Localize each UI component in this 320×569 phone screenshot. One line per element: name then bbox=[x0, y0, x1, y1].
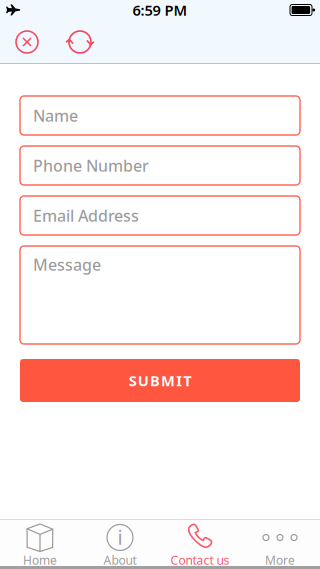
staticText: Message bbox=[33, 254, 101, 275]
button[interactable]: Phone Number bbox=[20, 146, 300, 185]
staticText: Email Address bbox=[33, 205, 139, 226]
button[interactable]: More bbox=[240, 518, 320, 567]
button[interactable]: Name bbox=[20, 96, 300, 135]
button[interactable]: Refresh bbox=[64, 22, 96, 62]
staticText: More bbox=[265, 552, 295, 568]
button[interactable]: Email Address bbox=[20, 196, 300, 235]
staticText: SUBMIT bbox=[129, 371, 191, 390]
staticText: About bbox=[103, 552, 136, 568]
staticText: Phone Number bbox=[33, 155, 149, 176]
button[interactable]: Close bbox=[11, 22, 43, 62]
staticText: 6:59 PM bbox=[132, 0, 187, 20]
button[interactable]: i bbox=[80, 518, 160, 567]
button[interactable]: SUBMIT bbox=[20, 359, 300, 402]
staticText: Home bbox=[23, 552, 57, 568]
staticText: i bbox=[117, 524, 122, 550]
button[interactable]: Message bbox=[20, 246, 300, 344]
button[interactable]: Contact us bbox=[160, 518, 240, 567]
staticText: Contact us bbox=[170, 552, 229, 568]
button[interactable]: Home bbox=[0, 518, 80, 567]
staticText: Name bbox=[33, 105, 78, 126]
